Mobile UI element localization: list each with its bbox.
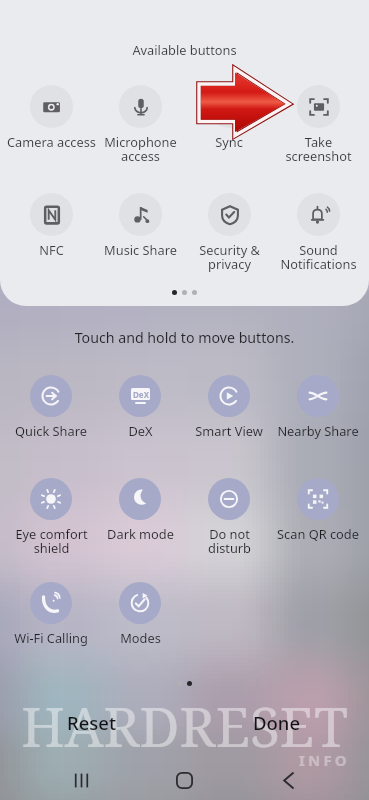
staticText: Nearby Share xyxy=(277,422,359,439)
staticText: Done xyxy=(253,710,301,735)
button[interactable]: Microphone access xyxy=(95,85,185,165)
staticText: Modes xyxy=(120,629,161,646)
button[interactable]: Recent apps xyxy=(53,760,110,800)
staticText: Available buttons xyxy=(0,41,369,58)
button[interactable]: Scan QR code xyxy=(273,478,363,542)
button[interactable]: Sync xyxy=(184,85,274,150)
staticText: DeX xyxy=(128,422,153,439)
staticText: Smart View xyxy=(195,422,263,439)
button[interactable]: DeX xyxy=(95,375,185,439)
staticText: Sound Notifications xyxy=(280,241,357,273)
staticText: Microphone access xyxy=(104,133,177,165)
staticText: Reset xyxy=(67,710,117,735)
button[interactable]: Modes xyxy=(95,582,185,646)
button[interactable]: Take screenshot xyxy=(273,85,363,165)
button[interactable]: Do not disturb xyxy=(184,478,274,557)
button[interactable]: Done xyxy=(184,703,369,741)
button[interactable]: Music Share xyxy=(95,193,185,258)
button[interactable]: Home xyxy=(156,760,213,800)
staticText: Take screenshot xyxy=(285,133,352,165)
staticText: DeX xyxy=(133,389,149,400)
button[interactable]: Smart View xyxy=(184,375,274,439)
button[interactable]: Security & privacy xyxy=(184,193,274,273)
staticText: Sync xyxy=(215,133,243,150)
staticText: INFO xyxy=(299,750,350,770)
staticText: Wi-Fi Calling xyxy=(14,629,88,646)
button[interactable]: NFC xyxy=(6,193,96,258)
button[interactable]: Eye comfort shield xyxy=(6,478,96,557)
staticText: Music Share xyxy=(104,241,177,258)
button[interactable]: Wi-Fi Calling xyxy=(6,582,96,646)
button[interactable]: Quick Share xyxy=(6,375,96,439)
staticText: Security & privacy xyxy=(199,241,260,273)
staticText: Do not disturb xyxy=(208,525,251,557)
staticText: Eye comfort shield xyxy=(15,525,88,557)
button[interactable]: Back xyxy=(260,760,317,800)
staticText: Touch and hold to move buttons. xyxy=(0,328,369,347)
staticText: Quick Share xyxy=(15,422,87,439)
button[interactable]: Dark mode xyxy=(95,478,185,542)
button[interactable]: Nearby Share xyxy=(273,375,363,439)
staticText: Scan QR code xyxy=(277,525,359,542)
button[interactable]: Reset xyxy=(0,703,184,741)
staticText: Dark mode xyxy=(107,525,174,542)
staticText: Camera access xyxy=(7,133,96,150)
button[interactable]: Sound Notifications xyxy=(273,193,363,273)
button[interactable]: Camera access xyxy=(6,85,96,150)
staticText: HARDRESET xyxy=(0,688,369,763)
staticText: NFC xyxy=(39,241,64,258)
